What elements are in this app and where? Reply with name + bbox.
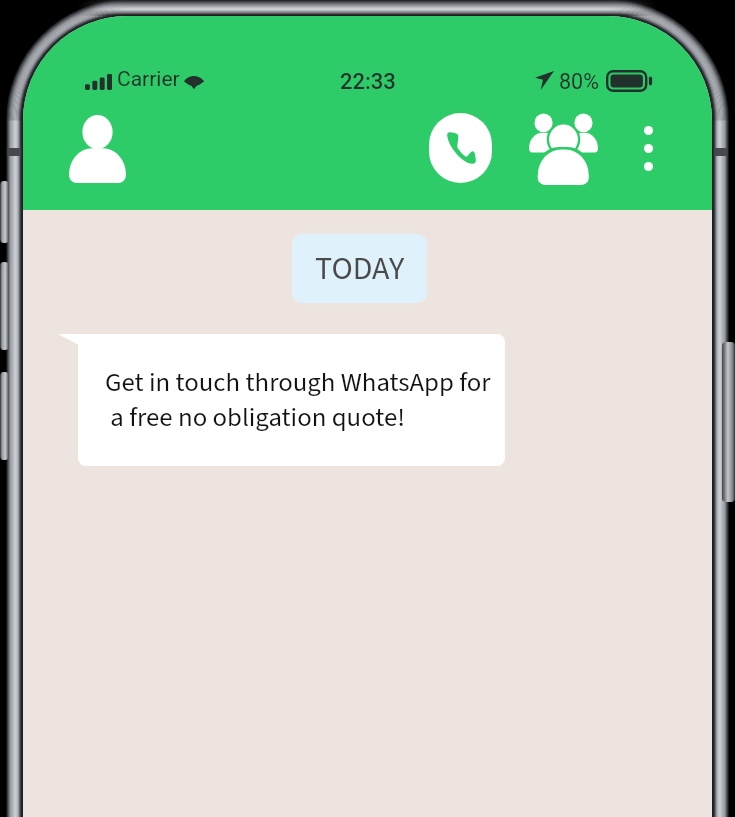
button[interactable]: Call	[424, 108, 497, 188]
button[interactable]: Get in touch through WhatsApp for a free…	[78, 334, 505, 466]
staticText: 22:33	[340, 69, 396, 95]
button[interactable]: Group	[524, 108, 602, 188]
button[interactable]: TODAY	[292, 234, 427, 303]
button[interactable]: More options	[624, 107, 673, 189]
staticText: TODAY	[315, 246, 405, 292]
staticText: Carrier	[117, 67, 180, 92]
staticText: Get in touch through WhatsApp for a free…	[105, 364, 505, 437]
staticText: 80%	[559, 69, 599, 94]
button[interactable]: Profile	[69, 115, 126, 183]
